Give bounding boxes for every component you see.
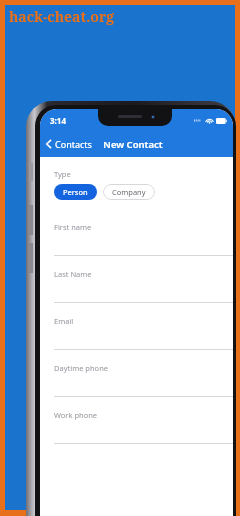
staticText: First name bbox=[54, 222, 92, 232]
staticText: hack-cheat.org bbox=[9, 7, 115, 26]
button[interactable]: Contacts bbox=[40, 134, 98, 154]
button[interactable]: Daytime phone bbox=[40, 363, 233, 410]
staticText: 3:14 bbox=[50, 115, 66, 126]
button[interactable]: First name bbox=[40, 222, 233, 269]
button[interactable]: Work phone bbox=[40, 410, 233, 457]
staticText: Contacts bbox=[55, 138, 92, 150]
staticText: Company bbox=[112, 187, 146, 197]
staticText: Daytime phone bbox=[54, 363, 108, 373]
staticText: Last Name bbox=[54, 269, 92, 279]
staticText: Person bbox=[63, 187, 88, 197]
staticText: Work phone bbox=[54, 410, 98, 420]
staticText: Email bbox=[54, 316, 74, 326]
button[interactable]: Last Name bbox=[40, 269, 233, 316]
staticText: New Contact bbox=[103, 138, 163, 151]
button[interactable]: Company bbox=[103, 184, 155, 200]
button[interactable]: Email bbox=[40, 316, 233, 363]
staticText: Type bbox=[54, 169, 71, 179]
button[interactable]: Person bbox=[54, 184, 97, 200]
